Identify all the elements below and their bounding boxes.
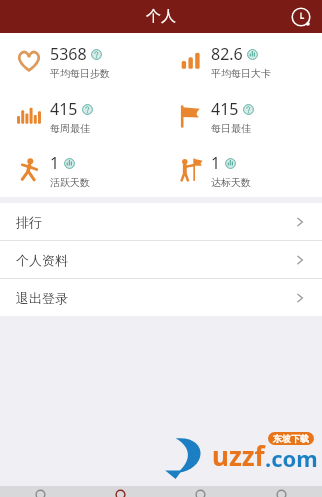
button[interactable]: Timer [288, 4, 314, 30]
staticText: 每日最佳 [211, 122, 251, 135]
staticText: 每周最佳 [50, 122, 90, 135]
button[interactable]: 退出登录 [0, 279, 322, 316]
staticText: 个人 [146, 7, 176, 26]
staticText: .com [265, 443, 318, 473]
staticText: 活跃天数 [50, 176, 90, 189]
button[interactable]: 415 [0, 89, 161, 143]
button[interactable]: 415 [161, 89, 322, 143]
button[interactable]: 个人资料 [0, 241, 322, 278]
staticText: 415 [50, 98, 78, 120]
staticText: 1 [50, 152, 60, 174]
staticText: 东坡下载 [273, 433, 309, 444]
staticText: 平均每日大卡 [211, 67, 271, 80]
button[interactable]: 82.6 [161, 33, 322, 89]
staticText: 415 [211, 98, 239, 120]
button[interactable]: 1 [161, 143, 322, 197]
staticText: 5368 [50, 43, 87, 65]
staticText: 个人资料 [16, 252, 68, 268]
staticText: 82.6 [211, 43, 243, 65]
button[interactable]: Home [0, 486, 80, 497]
staticText: 平均每日步数 [50, 67, 110, 80]
button[interactable]: More [241, 486, 322, 497]
button[interactable]: 排行 [0, 203, 322, 240]
staticText: 排行 [16, 214, 42, 230]
button[interactable]: 1 [0, 143, 161, 197]
staticText: uzzf [212, 438, 265, 473]
staticText: 退出登录 [16, 290, 68, 306]
button[interactable]: Stats [160, 486, 241, 497]
button[interactable]: Profile [80, 486, 160, 497]
staticText: 1 [211, 152, 221, 174]
staticText: 达标天数 [211, 176, 251, 189]
button[interactable]: 5368 [0, 33, 161, 89]
